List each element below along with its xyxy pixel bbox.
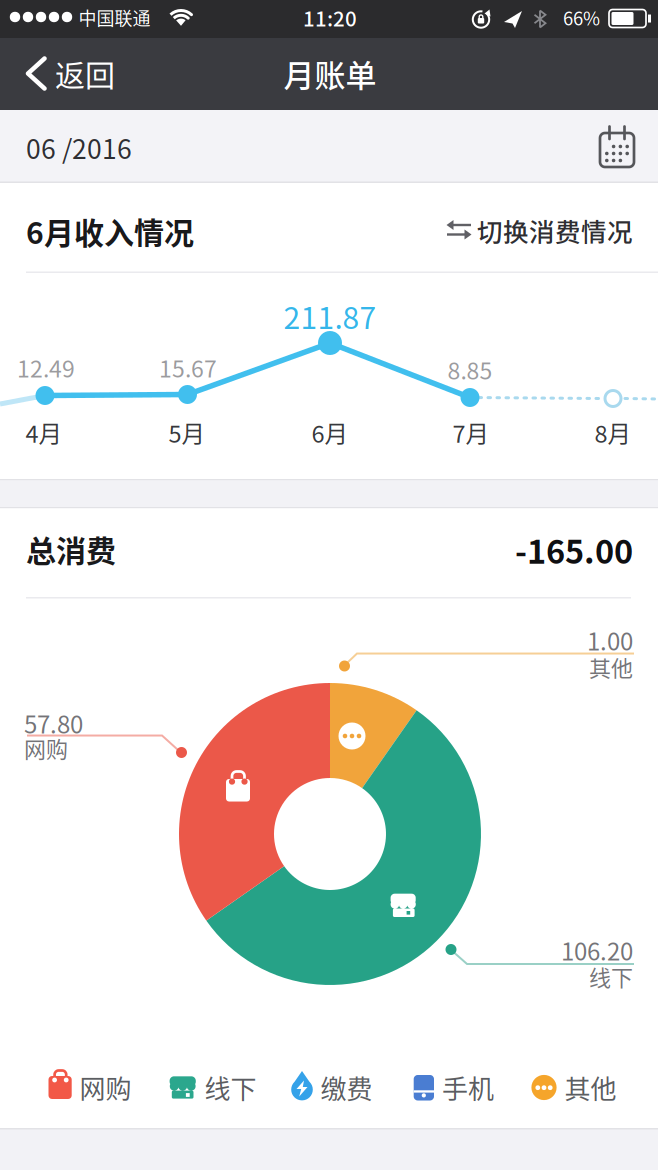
staticText: 06 /2016 xyxy=(26,128,132,167)
staticText: 其他 xyxy=(589,651,633,683)
staticText: 其他 xyxy=(564,1069,616,1106)
staticText: 总消费 xyxy=(26,527,116,571)
staticText: 211.87 xyxy=(283,294,376,338)
staticText: 5月 xyxy=(168,415,205,449)
staticText: 11:20 xyxy=(303,3,357,32)
staticText: 6月收入情况 xyxy=(26,209,194,253)
staticText: 切换消费情况 xyxy=(477,212,633,249)
staticText: 返回 xyxy=(55,52,115,95)
staticText: 7月 xyxy=(452,415,489,449)
staticText: 手机 xyxy=(442,1069,494,1106)
staticText: 月账单 xyxy=(283,51,376,96)
staticText: -165.00 xyxy=(515,526,633,573)
staticText: 66% xyxy=(563,4,600,31)
staticText: 8月 xyxy=(594,415,631,449)
staticText: 1.00 xyxy=(587,623,633,657)
staticText: 网购 xyxy=(79,1069,131,1106)
staticText: 6月 xyxy=(311,415,348,449)
staticText: 线下 xyxy=(204,1069,256,1106)
staticText: 线下 xyxy=(589,961,633,992)
staticText: 57.80 xyxy=(24,706,83,740)
staticText: 12.49 xyxy=(17,351,75,384)
staticText: 4月 xyxy=(25,415,62,449)
staticText: 网购 xyxy=(24,732,68,764)
staticText: 15.67 xyxy=(159,351,217,384)
staticText: 缴费 xyxy=(320,1069,372,1106)
staticText: 106.20 xyxy=(561,933,633,967)
staticText: 中国联通 xyxy=(78,4,150,31)
staticText: 8.85 xyxy=(447,353,492,386)
